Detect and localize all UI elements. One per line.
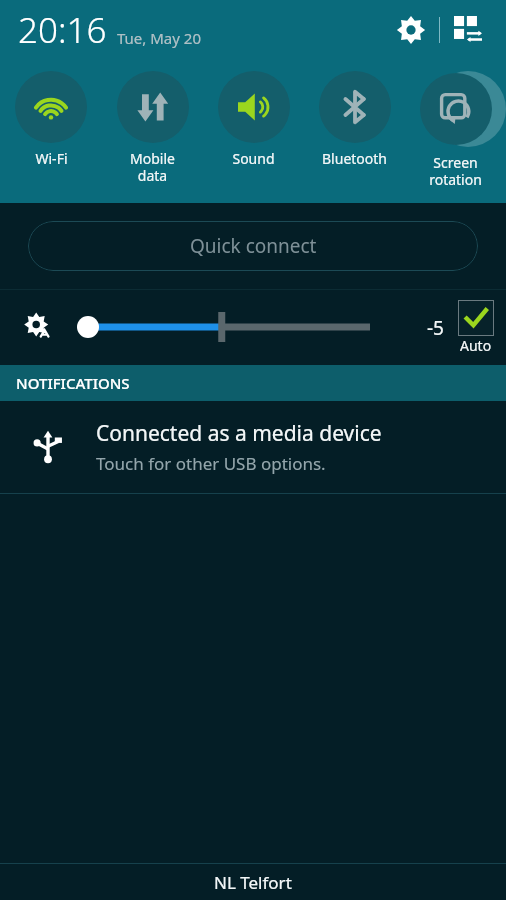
button[interactable]: Edit quick settings xyxy=(446,8,490,52)
staticText: Bluetooth xyxy=(322,149,387,168)
staticText: Screen rotation xyxy=(429,153,482,189)
staticText: Connected as a media device xyxy=(96,419,382,448)
staticText: Sound xyxy=(232,149,275,168)
button[interactable]: Auto xyxy=(458,300,494,355)
button[interactable]: Sound xyxy=(203,71,304,168)
button[interactable]: Bluetooth xyxy=(304,71,405,168)
staticText: Touch for other USB options. xyxy=(96,452,326,475)
button[interactable]: Screen rotation xyxy=(405,71,506,189)
staticText: Wi-Fi xyxy=(35,149,68,168)
button[interactable]: Mobile data xyxy=(102,71,203,185)
staticText: 20:16 xyxy=(18,6,107,54)
staticText: NL Telfort xyxy=(214,871,292,894)
staticText: Auto xyxy=(460,336,492,355)
staticText: -5 xyxy=(427,315,444,341)
button[interactable]: Wi-Fi xyxy=(0,71,102,168)
staticText: Tue, May 20 xyxy=(117,28,201,48)
button[interactable]: Auto brightness icon xyxy=(16,305,60,349)
button[interactable]: Brightness slider xyxy=(78,307,378,347)
button[interactable]: Quick connect xyxy=(28,221,478,271)
staticText: Mobile data xyxy=(130,149,175,185)
button[interactable]: Connected as a media device xyxy=(0,401,506,494)
staticText: Quick connect xyxy=(190,233,317,259)
button[interactable]: Settings xyxy=(389,8,433,52)
staticText: NOTIFICATIONS xyxy=(16,373,130,393)
